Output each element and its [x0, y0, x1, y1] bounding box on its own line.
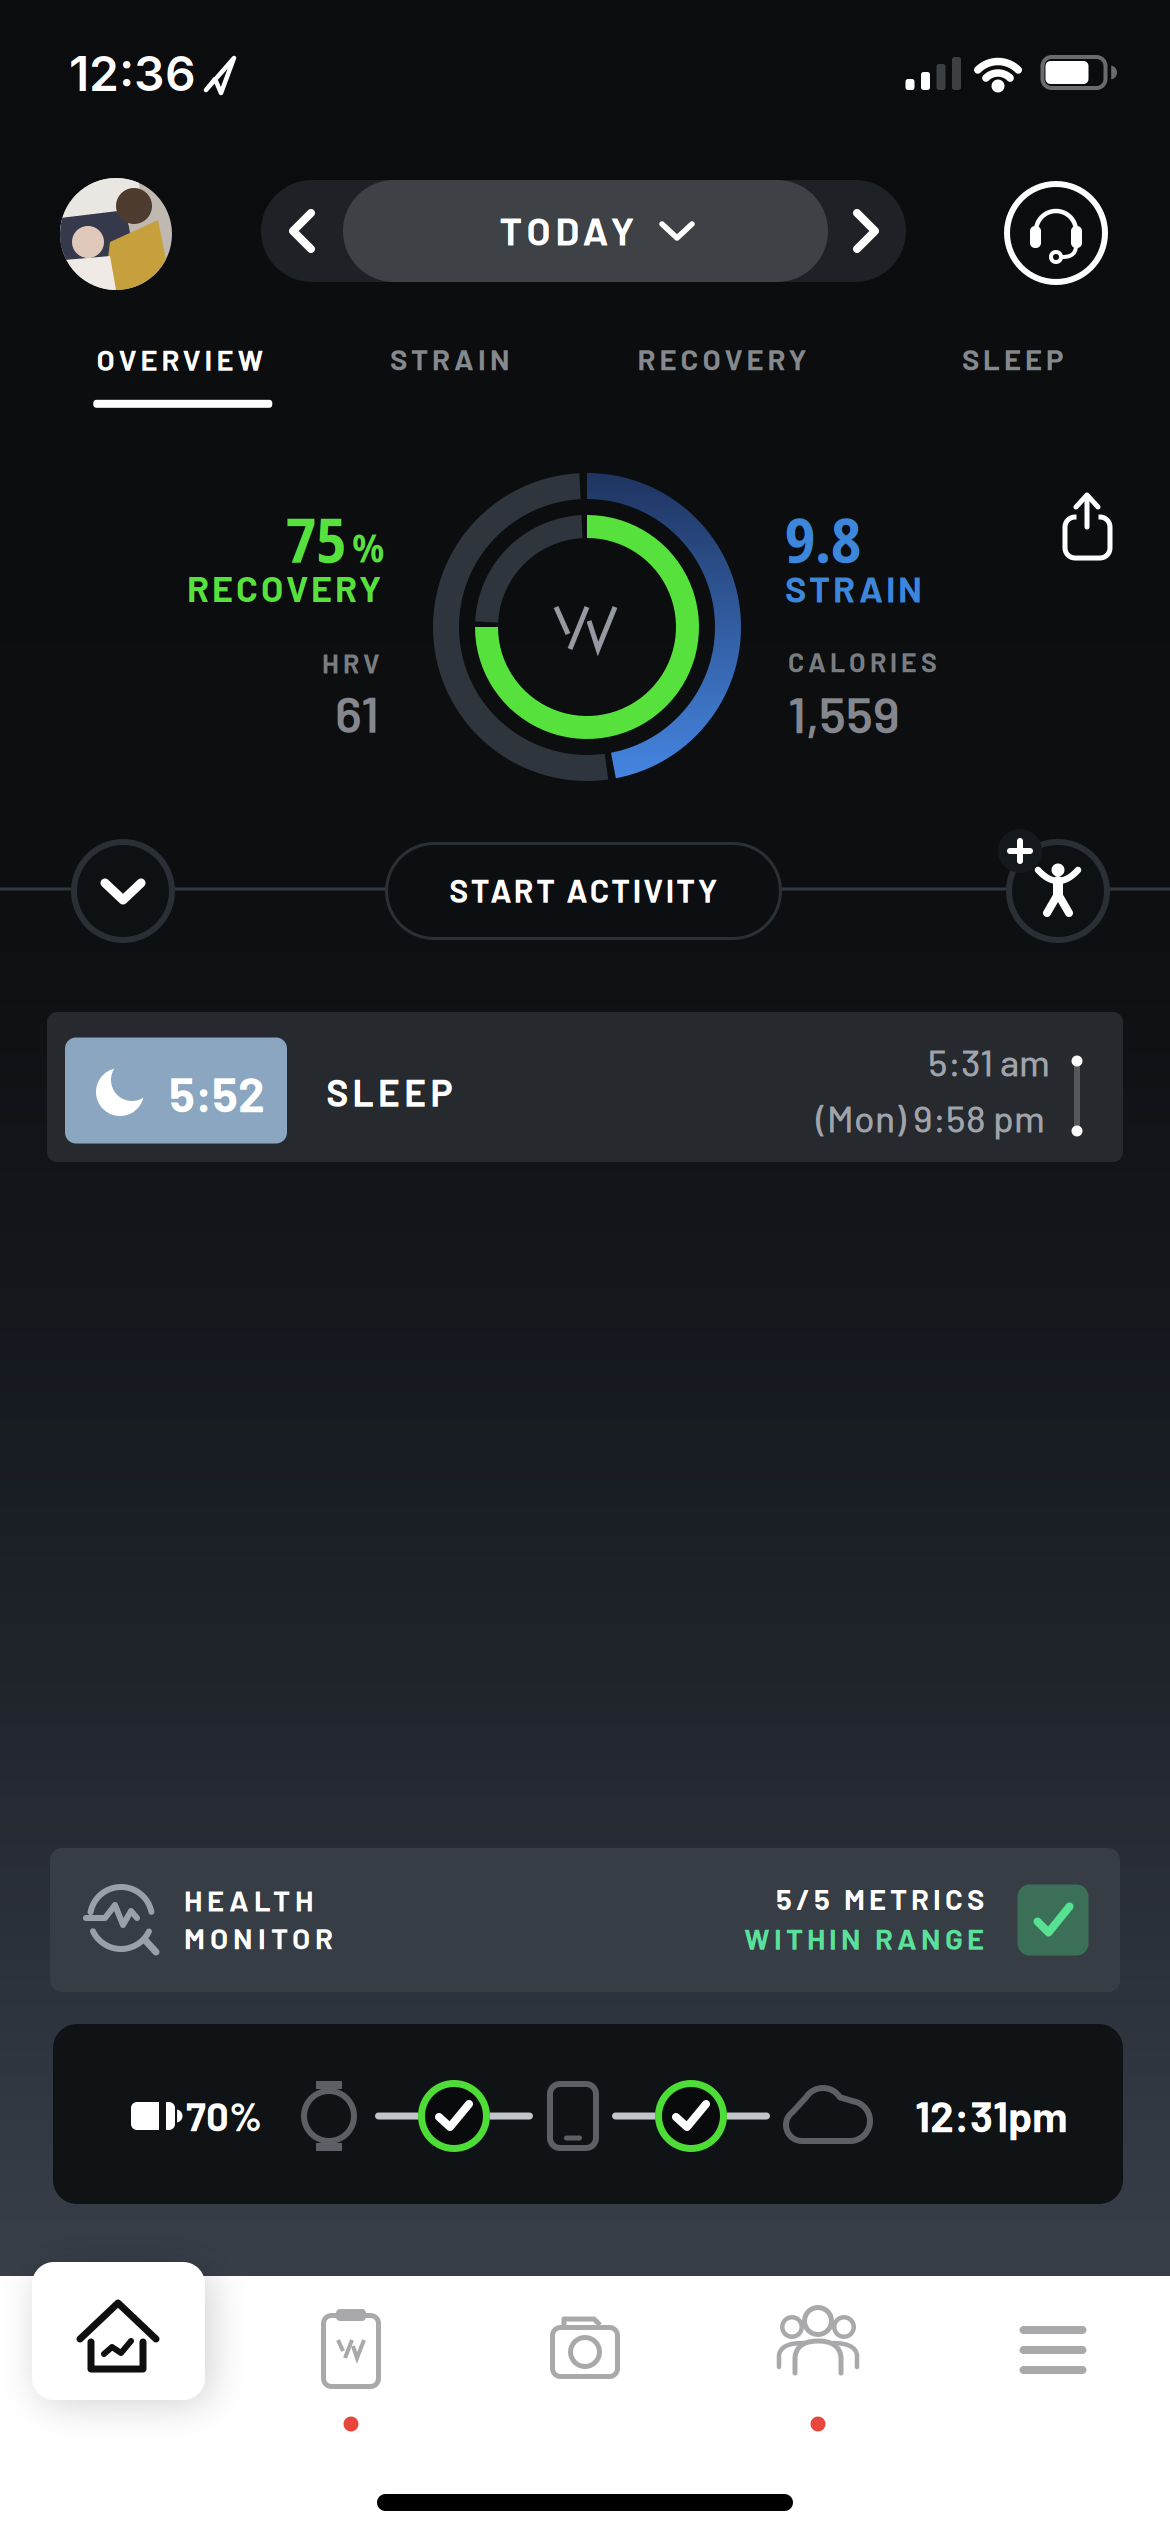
button[interactable]: All metrics within range	[1017, 1884, 1088, 1955]
staticText: 75	[286, 497, 346, 581]
button[interactable]: STRAIN	[340, 313, 560, 403]
staticText: 12:31pm	[915, 2090, 1068, 2141]
button[interactable]: HEALTH	[50, 1848, 1120, 1992]
staticText: HEALTH	[184, 1882, 313, 1917]
staticText: 5:52	[169, 1064, 265, 1122]
button[interactable]: Camera	[520, 2277, 650, 2437]
button[interactable]: More	[988, 2277, 1118, 2437]
button[interactable]: Next day	[825, 180, 907, 282]
button[interactable]: Share	[1053, 491, 1121, 565]
button[interactable]: START ACTIVITY	[385, 842, 782, 940]
button[interactable]: Support	[1004, 181, 1108, 285]
button[interactable]: Home	[32, 2262, 205, 2400]
staticText: 12:36	[69, 44, 196, 103]
button[interactable]: Community	[753, 2277, 883, 2437]
staticText: %	[352, 520, 384, 574]
staticText: SLEEP	[962, 341, 1064, 376]
button[interactable]: Add activity	[1006, 839, 1110, 943]
button[interactable]: 5:52	[47, 1012, 1123, 1162]
staticText: 1,559	[788, 683, 900, 743]
staticText: 9.8	[785, 497, 861, 581]
button[interactable]: Profile	[60, 178, 172, 290]
staticText: OVERVIEW	[96, 341, 263, 377]
staticText: RECOVERY	[187, 566, 381, 609]
staticText: (Mon) 9:58 pm	[816, 1095, 1045, 1140]
staticText: TODAY	[499, 207, 634, 253]
button[interactable]: Previous day	[261, 180, 343, 282]
staticText: MONITOR	[184, 1920, 333, 1955]
staticText: 70%	[186, 2091, 262, 2139]
button[interactable]: SLEEP	[913, 313, 1113, 403]
staticText: 5/5 METRICS	[776, 1881, 984, 1916]
button[interactable]: OVERVIEW	[60, 322, 300, 432]
staticText: CALORIES	[788, 645, 937, 677]
staticText: 61	[335, 682, 379, 743]
staticText: 5:31 am	[928, 1039, 1050, 1084]
staticText: RECOVERY	[637, 341, 806, 376]
staticText: STRAIN	[785, 566, 922, 610]
button[interactable]: Collapse	[71, 839, 175, 943]
button[interactable]: Journal	[286, 2277, 416, 2437]
button[interactable]: RECOVERY	[602, 313, 842, 403]
staticText: START ACTIVITY	[449, 871, 718, 909]
button[interactable]: TODAY	[343, 180, 828, 282]
staticText: STRAIN	[390, 341, 510, 376]
staticText: WITHIN RANGE	[744, 1920, 984, 1955]
staticText: HRV	[322, 647, 380, 679]
staticText: SLEEP	[326, 1069, 452, 1114]
